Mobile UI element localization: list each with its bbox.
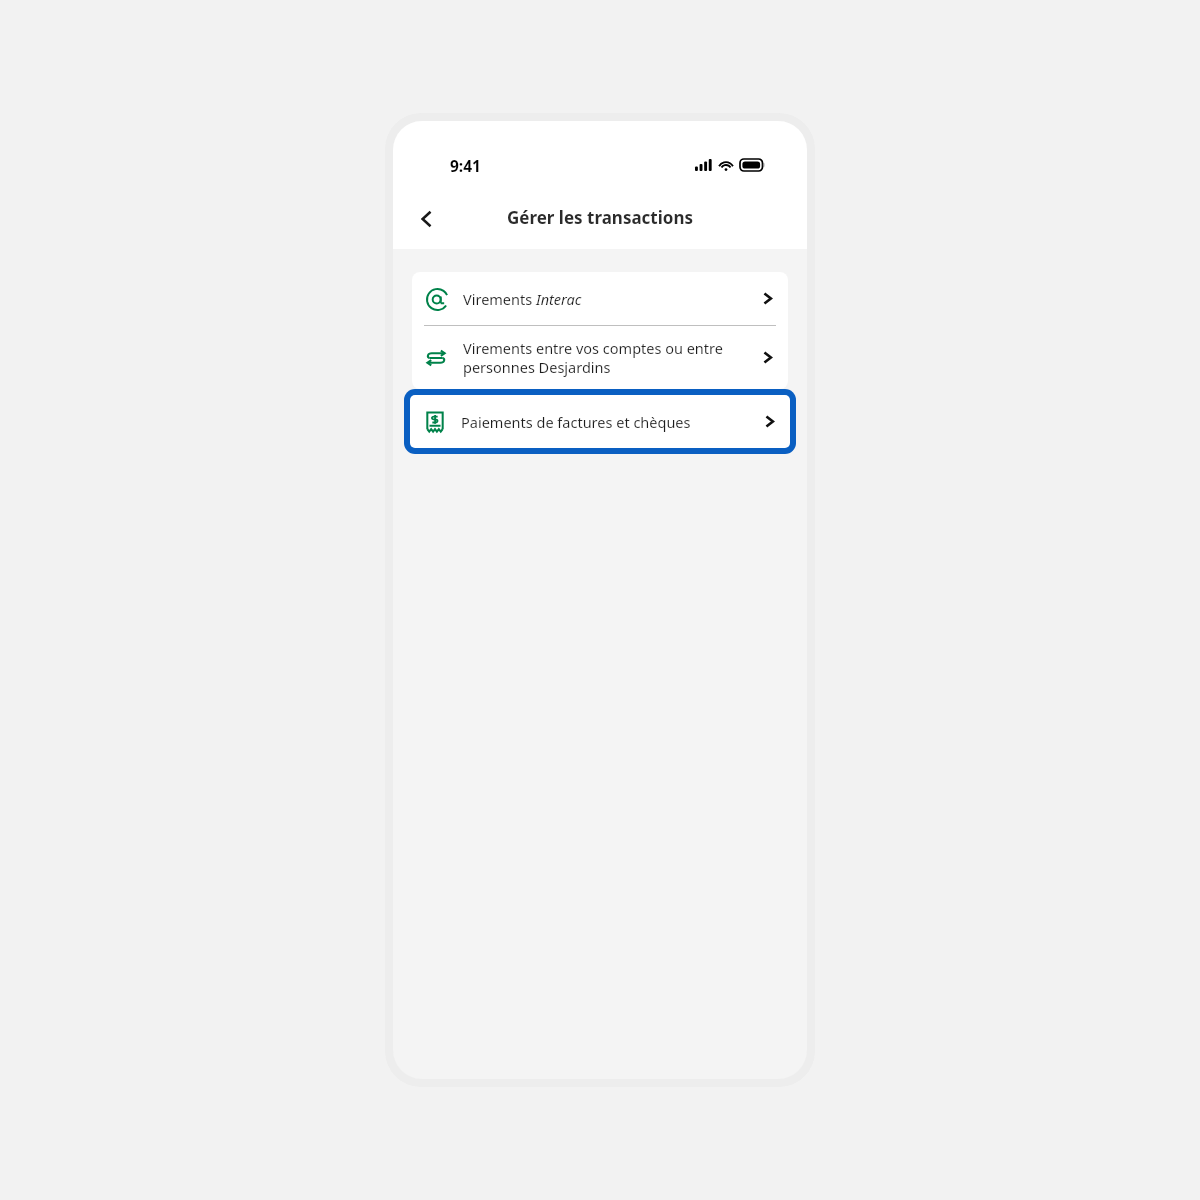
staticText: 9:41 [450, 155, 481, 176]
staticText: Virements Interac [463, 289, 582, 309]
button[interactable]: Paiements de factures et chèques [410, 395, 790, 448]
staticText: Gérer les transactions [393, 206, 807, 229]
button[interactable]: Back [407, 199, 447, 239]
button[interactable]: Paiements de factures et chèques [404, 389, 796, 454]
staticText: Virements entre vos comptes ou entre per… [463, 338, 751, 377]
staticText: Paiements de factures et chèques [461, 412, 691, 432]
button[interactable]: Virements Interac [412, 272, 788, 325]
button[interactable]: Virements entre vos comptes ou entre per… [412, 326, 788, 389]
